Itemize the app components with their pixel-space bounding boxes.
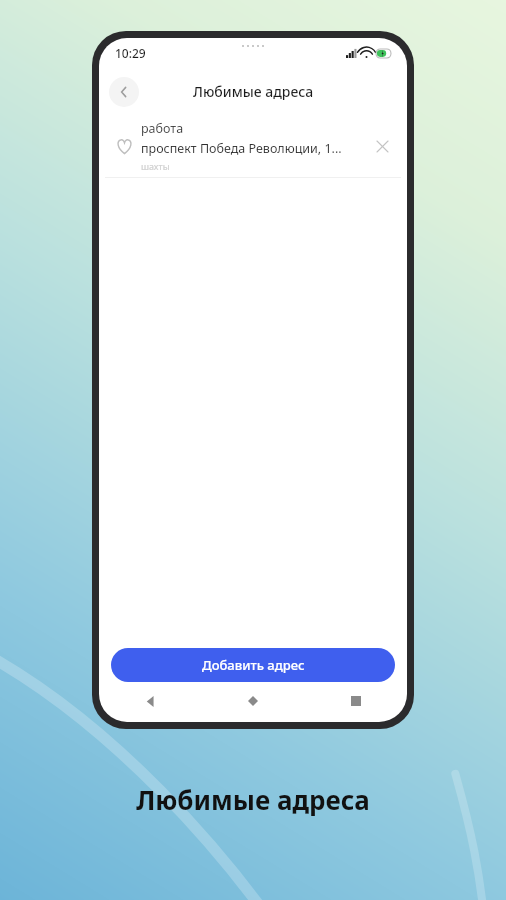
staticText: работа <box>141 120 184 137</box>
button[interactable]: Домой <box>201 682 304 720</box>
button[interactable]: Недавние <box>304 682 407 720</box>
staticText: Добавить адрес <box>202 656 305 674</box>
staticText: 10:29 <box>115 45 146 61</box>
staticText: шахты <box>141 160 170 172</box>
staticText: Любимые адреса <box>193 82 314 101</box>
button[interactable]: Удалить адрес <box>367 131 397 161</box>
staticText: Любимые адреса <box>136 782 370 817</box>
button[interactable]: Назад <box>99 682 201 720</box>
button[interactable]: работа <box>99 115 407 177</box>
button[interactable]: Добавить адрес <box>111 648 395 682</box>
staticText: проспект Победа Революции, 1... <box>141 140 342 157</box>
button[interactable]: Назад <box>109 77 139 107</box>
